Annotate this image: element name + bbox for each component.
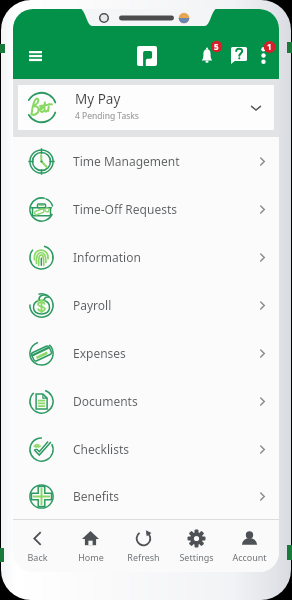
- button[interactable]: Notifications: [192, 41, 222, 71]
- button[interactable]: Refresh: [117, 520, 170, 572]
- button[interactable]: Account: [223, 520, 276, 572]
- staticText: Expenses: [73, 345, 257, 361]
- staticText: 1: [267, 41, 272, 52]
- button[interactable]: Paylocity: [130, 39, 164, 73]
- button[interactable]: Documents: [13, 377, 279, 425]
- button[interactable]: Payroll: [13, 281, 279, 329]
- staticText: Back: [27, 551, 48, 563]
- staticText: 5: [214, 41, 219, 52]
- button[interactable]: My Pay: [18, 85, 274, 130]
- button[interactable]: Home: [64, 520, 117, 572]
- staticText: Account: [232, 551, 267, 563]
- button[interactable]: Menu: [22, 43, 48, 69]
- staticText: Refresh: [127, 551, 160, 563]
- button[interactable]: Settings: [170, 520, 223, 572]
- button[interactable]: Checklists: [13, 425, 279, 473]
- button[interactable]: Time Management: [13, 137, 279, 185]
- staticText: Time-Off Requests: [73, 201, 257, 217]
- staticText: My Pay: [75, 90, 121, 108]
- staticText: 4 Pending Tasks: [75, 110, 139, 122]
- button[interactable]: Help: [224, 40, 254, 70]
- button[interactable]: Time-Off Requests: [13, 185, 279, 233]
- button[interactable]: Back: [13, 520, 64, 572]
- button[interactable]: More options: [250, 42, 277, 69]
- staticText: Documents: [73, 393, 257, 409]
- staticText: Payroll: [73, 297, 257, 313]
- button[interactable]: Benefits: [13, 473, 279, 519]
- staticText: Settings: [179, 551, 214, 563]
- staticText: Home: [78, 551, 104, 563]
- staticText: Information: [73, 249, 257, 265]
- staticText: Benefits: [73, 488, 257, 504]
- staticText: Time Management: [73, 153, 257, 169]
- staticText: Checklists: [73, 441, 257, 457]
- button[interactable]: Information: [13, 233, 279, 281]
- button[interactable]: Expenses: [13, 329, 279, 377]
